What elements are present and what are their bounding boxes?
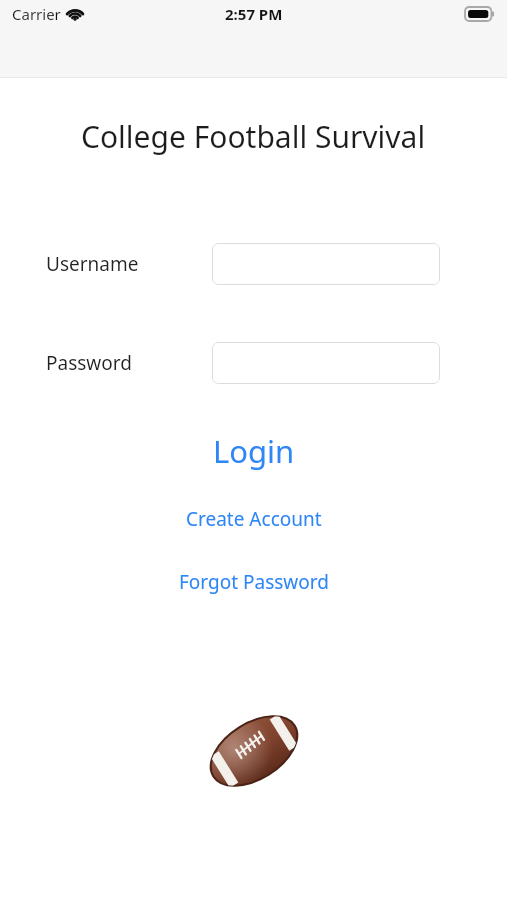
- button[interactable]: Username input: [212, 243, 440, 285]
- staticText: Login: [213, 430, 295, 472]
- button[interactable]: Password input: [212, 342, 440, 384]
- staticText: Create Account: [186, 506, 322, 532]
- button[interactable]: Create Account: [172, 502, 336, 536]
- staticText: Forgot Password: [179, 569, 329, 595]
- button[interactable]: Login: [199, 426, 309, 476]
- staticText: Password: [46, 350, 132, 376]
- staticText: Carrier: [12, 4, 61, 24]
- other: Football: [207, 706, 301, 796]
- staticText: 2:57 PM: [225, 4, 283, 24]
- staticText: College Football Survival: [81, 116, 426, 157]
- button[interactable]: Forgot Password: [165, 565, 343, 599]
- staticText: Username: [46, 251, 139, 277]
